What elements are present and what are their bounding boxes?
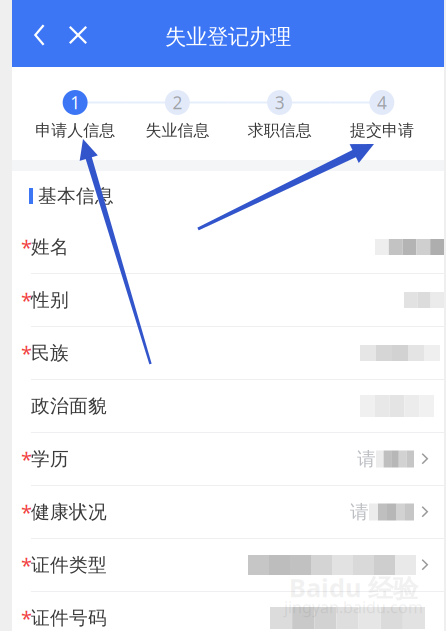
button[interactable]: 4 (331, 90, 433, 139)
staticText: * (21, 605, 32, 631)
staticText: 提交申请 (350, 121, 414, 140)
button[interactable]: * (12, 592, 444, 631)
staticText: 基本信息 (38, 184, 114, 207)
button[interactable]: * (12, 380, 444, 433)
staticText: 性别 (31, 288, 69, 311)
staticText: * (21, 552, 32, 578)
staticText: jingyan.baidu.com (284, 596, 423, 618)
button[interactable]: * (12, 274, 444, 327)
button[interactable]: 1 (24, 90, 126, 139)
staticText: 学历 (31, 447, 69, 470)
staticText: 失业登记办理 (165, 24, 291, 50)
staticText: 1 (70, 91, 80, 114)
staticText: 2 (172, 91, 182, 114)
staticText: 4 (377, 91, 387, 114)
staticText: 民族 (31, 341, 69, 364)
staticText: 申请人信息 (35, 121, 115, 140)
staticText: 证件号码 (31, 606, 107, 629)
staticText: 姓名 (31, 235, 69, 258)
button[interactable]: * (12, 221, 444, 274)
staticText: 失业信息 (145, 121, 209, 140)
staticText: * (21, 446, 32, 472)
staticText: 健康状况 (31, 500, 107, 523)
staticText: * (21, 393, 32, 419)
staticText: * (21, 234, 32, 260)
staticText: 政治面貌 (31, 394, 107, 417)
staticText: 请 (357, 447, 376, 470)
staticText: * (21, 340, 32, 366)
staticText: * (21, 287, 32, 313)
staticText: * (21, 499, 32, 525)
button[interactable]: * (12, 327, 444, 380)
staticText: 求职信息 (248, 121, 312, 140)
staticText: 请 (350, 500, 369, 523)
button[interactable]: 2 (126, 90, 228, 139)
button[interactable]: * (12, 486, 444, 539)
button[interactable]: 关闭 (56, 1, 100, 68)
button[interactable]: 3 (228, 90, 331, 139)
button[interactable]: * (12, 539, 444, 592)
staticText: 证件类型 (31, 553, 107, 576)
button[interactable]: 返回 (23, 1, 56, 68)
staticText: Baidu 经验 (289, 571, 418, 604)
staticText: 3 (275, 91, 285, 114)
button[interactable]: * (12, 433, 444, 486)
